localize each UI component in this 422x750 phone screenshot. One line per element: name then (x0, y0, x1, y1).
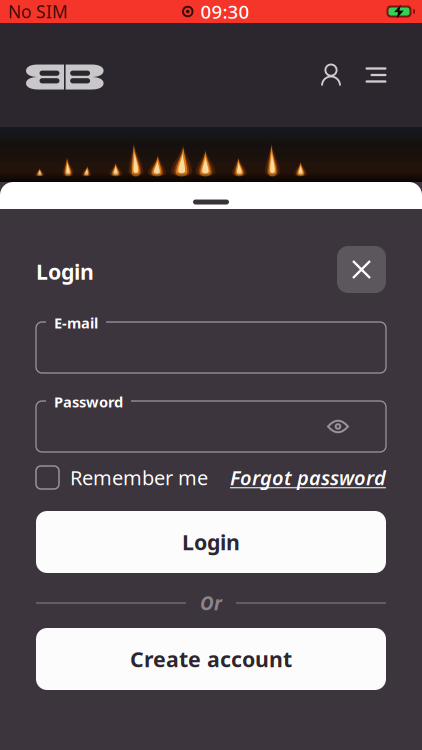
button[interactable]: Menu (356, 55, 396, 95)
button[interactable]: Remember me (36, 464, 208, 491)
button[interactable]: Account (311, 55, 351, 95)
button[interactable]: Forgot password (230, 464, 386, 491)
button[interactable]: Create account (36, 628, 386, 690)
staticText: Or (200, 591, 222, 615)
staticText: E-mail (54, 313, 98, 332)
button[interactable]: Close (337, 246, 386, 293)
staticText: Forgot password (230, 464, 386, 491)
staticText: Remember me (70, 464, 208, 491)
staticText: Login (182, 528, 240, 556)
staticText: Login (36, 257, 94, 286)
button[interactable]: Login (36, 511, 386, 573)
staticText: 09:30 (200, 0, 249, 24)
staticText: No SIM (8, 0, 68, 23)
staticText: Create account (130, 645, 292, 673)
staticText: Password (54, 392, 123, 411)
